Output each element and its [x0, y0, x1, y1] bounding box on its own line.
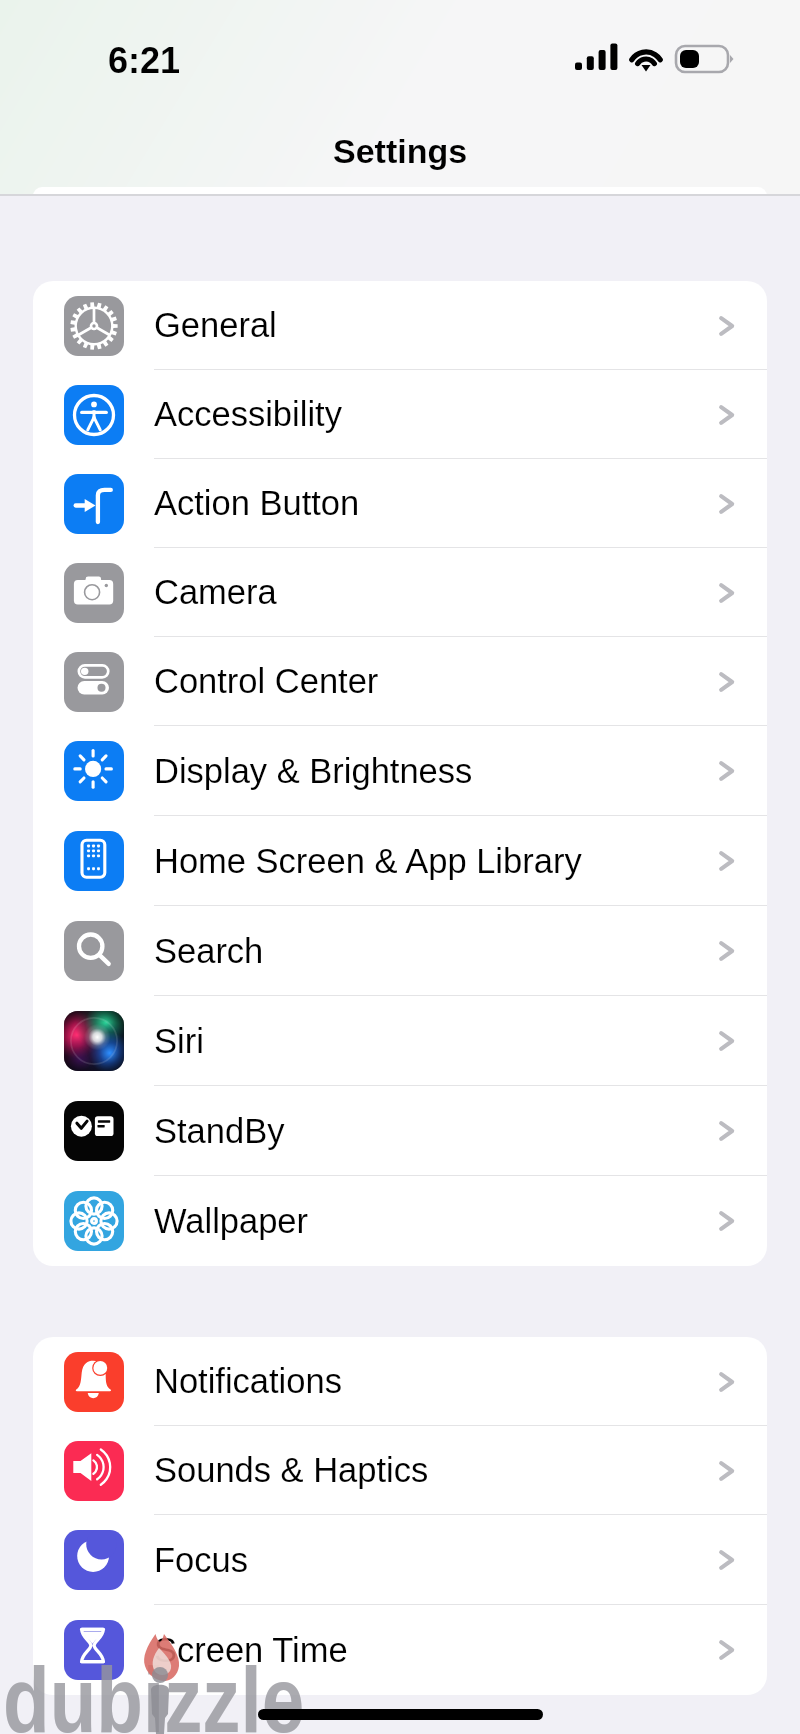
button[interactable]: Siri	[33, 996, 767, 1086]
staticText: Settings	[333, 132, 468, 170]
staticText: General	[154, 306, 715, 345]
staticText: Accessibility	[154, 395, 715, 434]
button[interactable]: Action Button	[33, 459, 767, 548]
staticText: Screen Time	[154, 1631, 715, 1670]
staticText: Control Center	[154, 662, 715, 701]
staticText: 6:21	[108, 40, 181, 80]
staticText: Search	[154, 932, 715, 971]
staticText: Camera	[154, 573, 715, 612]
staticText: Notifications	[154, 1362, 715, 1401]
staticText: Action Button	[154, 484, 715, 523]
button[interactable]: Focus	[33, 1515, 767, 1605]
button[interactable]: Control Center	[33, 637, 767, 726]
staticText: Siri	[154, 1022, 715, 1061]
staticText: dubizzle	[3, 1649, 304, 1734]
button[interactable]: General	[33, 281, 767, 370]
button[interactable]: Search	[33, 906, 767, 996]
staticText: Display & Brightness	[154, 752, 715, 791]
button[interactable]: Screen Time	[33, 1605, 767, 1695]
button[interactable]: Sounds & Haptics	[33, 1426, 767, 1515]
staticText: Home Screen & App Library	[154, 842, 715, 881]
staticText: Focus	[154, 1541, 715, 1580]
button[interactable]: Camera	[33, 548, 767, 637]
staticText: StandBy	[154, 1112, 715, 1151]
button[interactable]: Display & Brightness	[33, 726, 767, 816]
button[interactable]: Notifications	[33, 1337, 767, 1426]
button[interactable]: StandBy	[33, 1086, 767, 1176]
staticText: Sounds & Haptics	[154, 1451, 715, 1490]
button[interactable]: Wallpaper	[33, 1176, 767, 1266]
staticText: Wallpaper	[154, 1202, 715, 1241]
button[interactable]: Accessibility	[33, 370, 767, 459]
button[interactable]: Home Screen & App Library	[33, 816, 767, 906]
